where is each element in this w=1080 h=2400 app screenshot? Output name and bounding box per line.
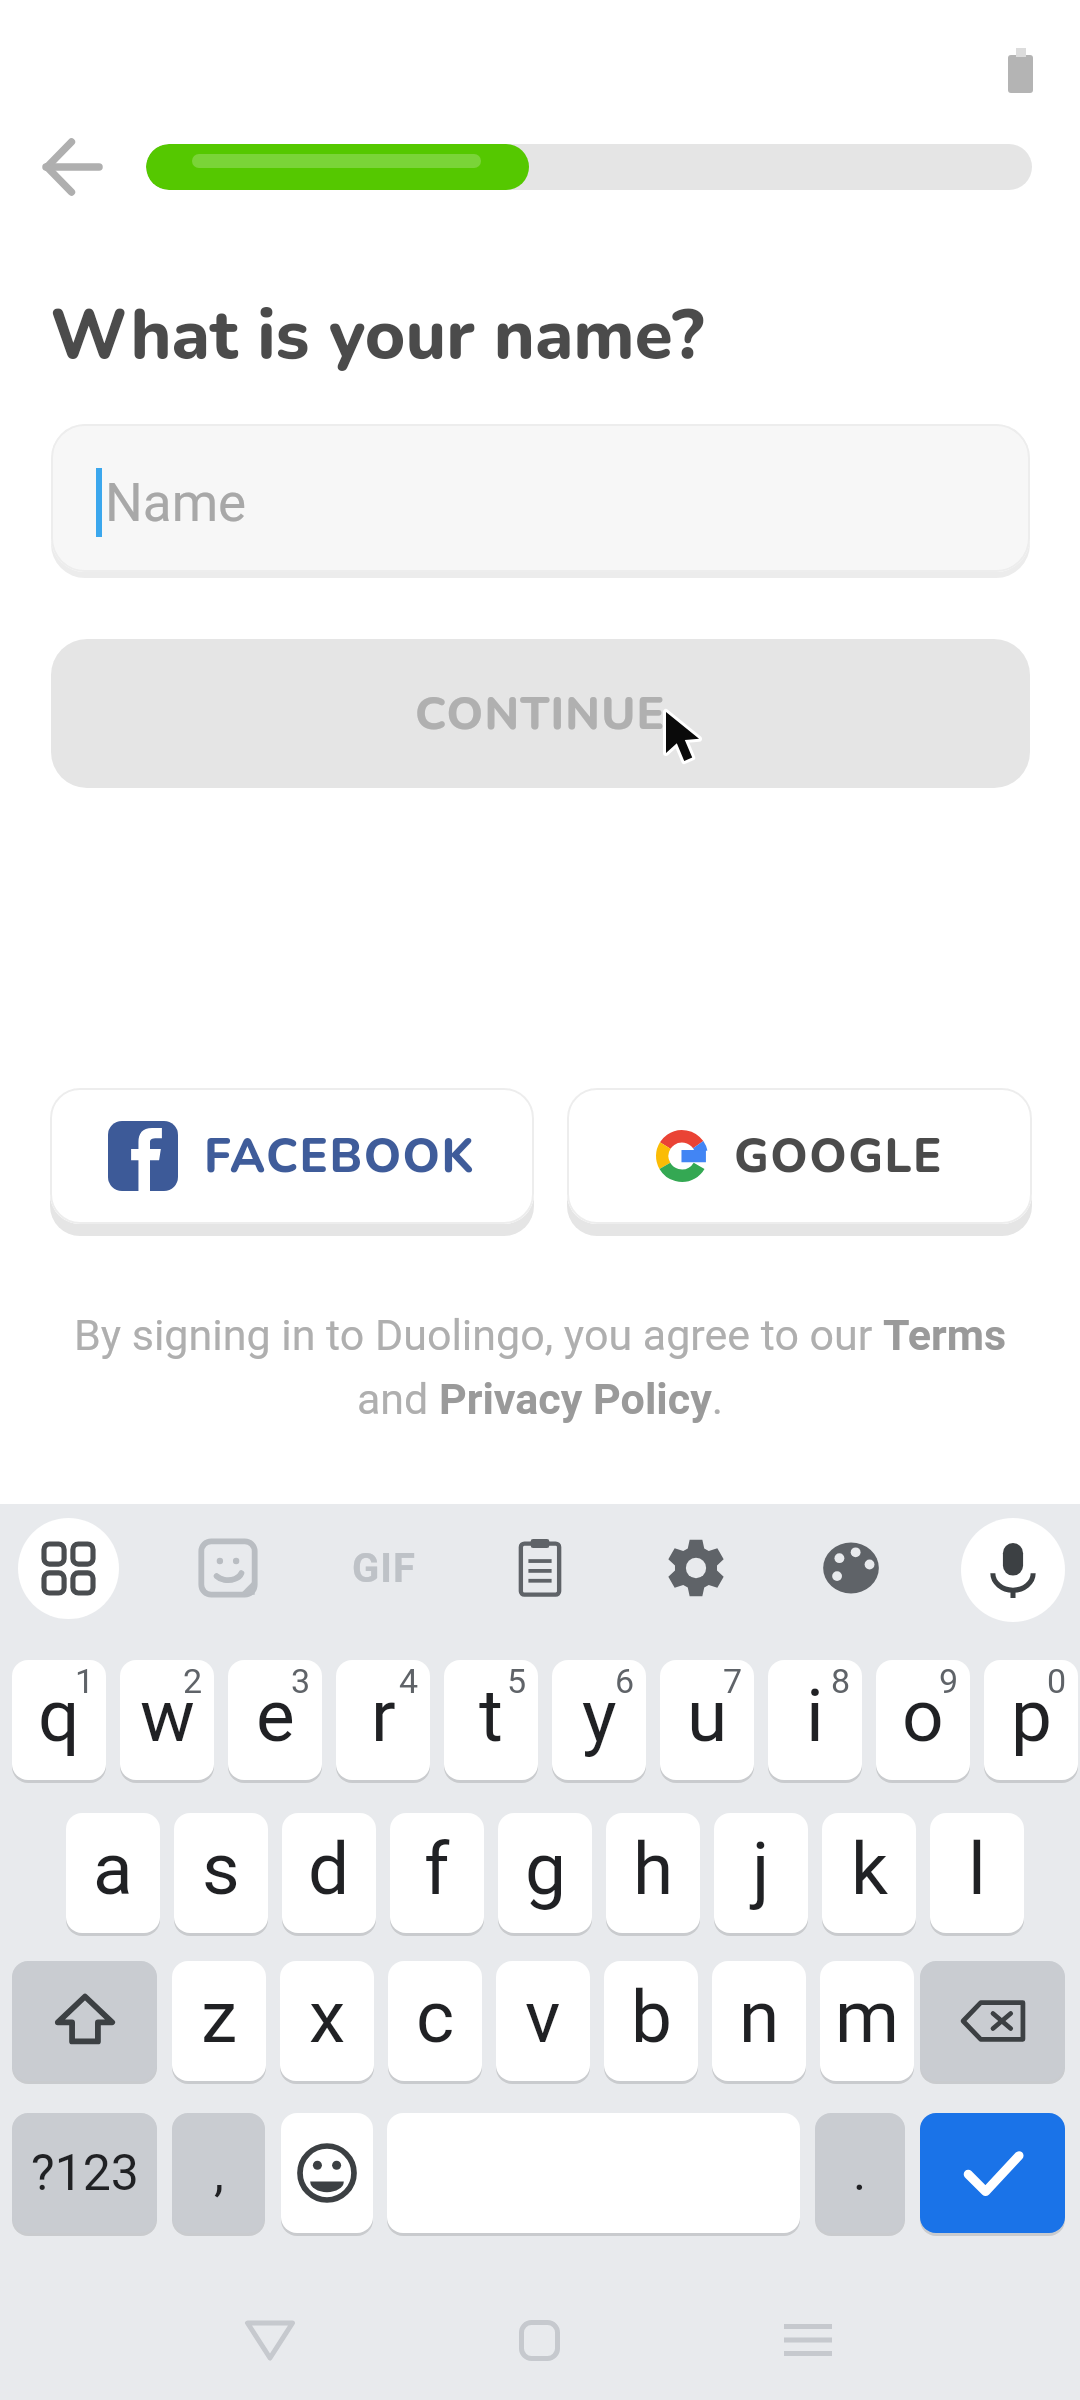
staticText: 4	[399, 1661, 419, 1701]
button[interactable]: g	[498, 1813, 592, 1933]
button[interactable]: Home	[489, 2290, 589, 2390]
button[interactable]: Enter	[920, 2113, 1065, 2233]
button[interactable]: f	[390, 1813, 484, 1933]
button[interactable]: k	[822, 1813, 916, 1933]
staticText: What is your name?	[50, 288, 705, 382]
staticText: k	[851, 1826, 888, 1912]
staticText: h	[633, 1826, 674, 1912]
button[interactable]: Name	[51, 424, 1030, 572]
button[interactable]: e	[228, 1660, 322, 1780]
button[interactable]: FACEBOOK	[50, 1088, 534, 1224]
button[interactable]: d	[282, 1813, 376, 1933]
button[interactable]: CONTINUE	[51, 639, 1030, 788]
button[interactable]: Keyboard tool	[178, 1518, 278, 1618]
staticText: 0	[1047, 1661, 1067, 1701]
button[interactable]: y	[552, 1660, 646, 1780]
staticText: 6	[615, 1661, 635, 1701]
staticText: x	[309, 1974, 346, 2060]
staticText: j	[752, 1826, 770, 1912]
button[interactable]: q	[12, 1660, 106, 1780]
button[interactable]: Backspace	[920, 1961, 1065, 2081]
staticText: i	[806, 1673, 824, 1759]
button[interactable]: v	[496, 1961, 590, 2081]
staticText: Name	[105, 472, 247, 534]
staticText: 9	[939, 1661, 959, 1701]
staticText: b	[631, 1974, 672, 2060]
button[interactable]: z	[172, 1961, 266, 2081]
button[interactable]: ?123	[12, 2113, 157, 2233]
button[interactable]: GOOGLE	[567, 1088, 1032, 1224]
button[interactable]: Keyboard tool	[490, 1518, 590, 1618]
staticText: z	[201, 1974, 238, 2060]
button[interactable]: j	[714, 1813, 808, 1933]
staticText: n	[739, 1974, 780, 2060]
button[interactable]: Keyboard switcher	[18, 1518, 119, 1619]
staticText: p	[1011, 1673, 1052, 1759]
staticText: v	[525, 1974, 561, 2060]
staticText: 7	[723, 1661, 743, 1701]
staticText: FACEBOOK	[204, 1124, 476, 1188]
staticText: q	[38, 1673, 80, 1759]
staticText: GOOGLE	[734, 1124, 943, 1188]
staticText: g	[525, 1826, 566, 1912]
button[interactable]: p	[984, 1660, 1078, 1780]
staticText: 5	[507, 1661, 527, 1701]
button[interactable]: Keyboard tool	[646, 1518, 746, 1618]
staticText: w	[140, 1673, 195, 1759]
staticText: ,	[214, 2144, 224, 2203]
button[interactable]: l	[930, 1813, 1024, 1933]
button[interactable]: s	[174, 1813, 268, 1933]
button[interactable]: Emoji	[281, 2113, 373, 2233]
button[interactable]: Shift	[12, 1961, 157, 2081]
button[interactable]: b	[604, 1961, 698, 2081]
staticText: r	[371, 1673, 396, 1759]
button[interactable]: GIF	[334, 1518, 434, 1618]
button[interactable]: Back	[22, 117, 122, 217]
staticText: 2	[183, 1661, 203, 1701]
staticText: l	[968, 1826, 986, 1912]
staticText: By signing in to Duolingo, you agree to …	[55, 1310, 1025, 1424]
button[interactable]: h	[606, 1813, 700, 1933]
staticText: d	[308, 1826, 350, 1912]
staticText: u	[687, 1673, 728, 1759]
button[interactable]: t	[444, 1660, 538, 1780]
staticText: f	[424, 1826, 450, 1912]
button[interactable]: o	[876, 1660, 970, 1780]
staticText: m	[835, 1974, 900, 2060]
button[interactable]: Back	[220, 2290, 320, 2390]
button[interactable]: r	[336, 1660, 430, 1780]
button[interactable]: .	[815, 2113, 905, 2233]
button[interactable]: x	[280, 1961, 374, 2081]
staticText: 8	[831, 1661, 851, 1701]
button[interactable]: Recents	[758, 2290, 858, 2390]
staticText: GIF	[352, 1545, 416, 1592]
button[interactable]: ,	[172, 2113, 265, 2233]
button[interactable]: u	[660, 1660, 754, 1780]
staticText: CONTINUE	[415, 682, 666, 745]
button[interactable]: a	[66, 1813, 160, 1933]
button[interactable]: w	[120, 1660, 214, 1780]
staticText: e	[256, 1673, 295, 1759]
staticText: s	[202, 1826, 240, 1912]
staticText: a	[93, 1826, 133, 1912]
button[interactable]: i	[768, 1660, 862, 1780]
staticText: 3	[291, 1661, 311, 1701]
button[interactable]: Voice input	[961, 1518, 1065, 1622]
staticText: y	[582, 1673, 617, 1759]
button[interactable]: c	[388, 1961, 482, 2081]
staticText: .	[853, 2144, 867, 2203]
staticText: t	[479, 1673, 503, 1759]
staticText: c	[416, 1974, 455, 2060]
button[interactable]: n	[712, 1961, 806, 2081]
staticText: o	[902, 1673, 944, 1759]
staticText: ?123	[31, 2144, 139, 2203]
staticText: 1	[75, 1661, 95, 1701]
button[interactable]: m	[820, 1961, 914, 2081]
button[interactable]: Keyboard tool	[801, 1518, 901, 1618]
